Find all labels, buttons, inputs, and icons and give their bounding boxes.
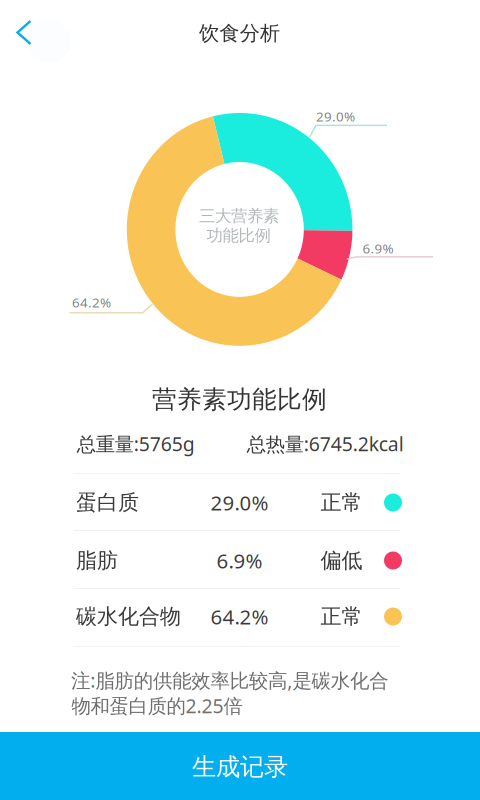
staticText: 蛋白质	[76, 489, 139, 516]
staticText: 29.0%	[316, 107, 355, 125]
staticText: 三大营养素	[199, 206, 279, 226]
staticText: 功能比例	[206, 225, 270, 246]
staticText: 生成记录	[192, 752, 288, 782]
staticText: 6.9%	[216, 547, 262, 574]
staticText: 饮食分析	[199, 20, 280, 46]
staticText: 偏低	[320, 547, 362, 574]
staticText: 正常	[320, 489, 362, 516]
staticText: 总热量:6745.2kcal	[247, 431, 404, 457]
staticText: 碳水化合物	[76, 603, 181, 630]
staticText: 正常	[320, 603, 362, 630]
staticText: 64.2%	[210, 603, 268, 630]
staticText: 6.9%	[362, 239, 393, 257]
button[interactable]: 生成记录	[0, 732, 480, 800]
staticText: 注:脂肪的供能效率比较高,是碳水化合	[71, 667, 388, 693]
staticText: 64.2%	[72, 293, 111, 311]
staticText: 29.0%	[210, 489, 268, 516]
button[interactable]: Back	[0, 0, 56, 65]
staticText: 物和蛋白质的2.25倍	[72, 692, 243, 719]
staticText: 总重量:5765g	[77, 431, 195, 457]
staticText: 营养素功能比例	[152, 384, 327, 415]
staticText: 脂肪	[76, 547, 118, 574]
